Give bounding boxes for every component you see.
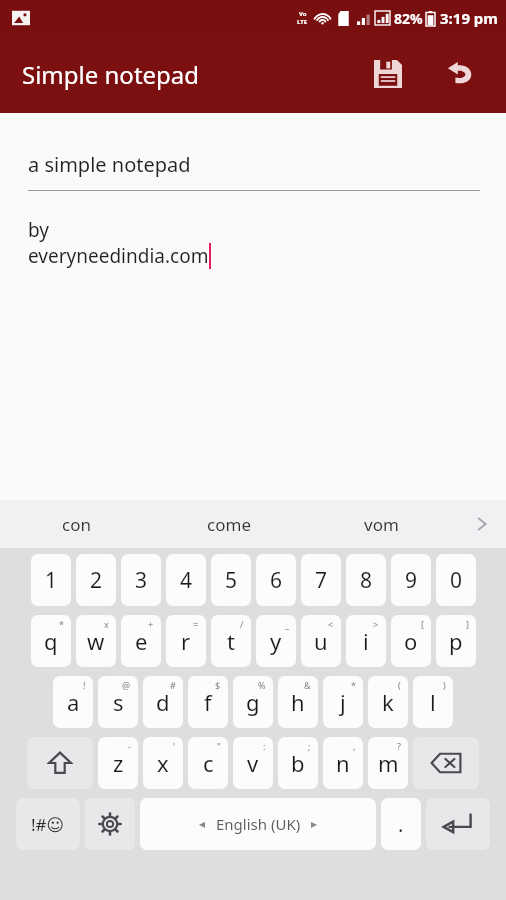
button[interactable]: come xyxy=(152,500,305,548)
button[interactable]: ; xyxy=(278,737,318,789)
button[interactable]: - xyxy=(98,737,138,789)
button[interactable]: " xyxy=(188,737,228,789)
button[interactable]: ) xyxy=(413,676,453,728)
button[interactable]: % xyxy=(233,676,273,728)
button[interactable]: More suggestions xyxy=(458,500,506,548)
staticText: ( xyxy=(398,679,401,691)
button[interactable]: Symbols xyxy=(16,798,80,850)
staticText: 9 xyxy=(405,566,418,595)
staticText: + xyxy=(148,618,154,630)
button[interactable]: 6 xyxy=(256,554,296,606)
button[interactable]: > xyxy=(346,615,386,667)
button[interactable]: x xyxy=(76,615,116,667)
staticText: 3 xyxy=(135,566,148,595)
button[interactable]: 9 xyxy=(391,554,431,606)
staticText: f xyxy=(204,687,212,717)
staticText: 8 xyxy=(360,566,373,595)
button[interactable]: Backspace xyxy=(413,737,479,789)
staticText: by xyxy=(28,217,49,243)
button[interactable]: + xyxy=(121,615,161,667)
button[interactable]: 3 xyxy=(121,554,161,606)
staticText: ? xyxy=(397,740,401,752)
staticText: * xyxy=(351,679,356,691)
button[interactable]: ( xyxy=(368,676,408,728)
button[interactable]: $ xyxy=(188,676,228,728)
button[interactable]: / xyxy=(211,615,251,667)
button[interactable]: vom xyxy=(305,500,458,548)
button[interactable]: < xyxy=(301,615,341,667)
staticText: [ xyxy=(421,618,424,630)
staticText: i xyxy=(363,626,369,656)
staticText: d xyxy=(156,687,170,717)
button[interactable]: Save xyxy=(362,48,414,100)
staticText: / xyxy=(240,618,244,630)
staticText: vom xyxy=(364,513,399,536)
button[interactable]: Undo xyxy=(436,48,488,100)
staticText: ; xyxy=(308,740,311,752)
staticText: Simple notepad xyxy=(22,58,200,91)
staticText: k xyxy=(382,687,394,717)
staticText: z xyxy=(113,748,124,778)
staticText: @ xyxy=(122,679,131,691)
button[interactable]: = xyxy=(166,615,206,667)
button[interactable]: ' xyxy=(143,737,183,789)
staticText: j xyxy=(340,687,346,717)
staticText: n xyxy=(336,748,350,778)
staticText: h xyxy=(291,687,305,717)
button[interactable]: # xyxy=(143,676,183,728)
button[interactable]: Enter xyxy=(426,798,490,850)
button[interactable]: ! xyxy=(53,676,93,728)
button[interactable]: , xyxy=(323,737,363,789)
button[interactable]: _ xyxy=(256,615,296,667)
staticText: 6 xyxy=(270,566,283,595)
staticText: > xyxy=(373,618,379,630)
staticText: come xyxy=(207,513,251,536)
button[interactable]: Space, English (UK) xyxy=(140,798,376,850)
staticText: e xyxy=(135,626,148,656)
button[interactable]: @ xyxy=(98,676,138,728)
button[interactable]: . xyxy=(381,798,421,850)
button[interactable]: Shift xyxy=(27,737,93,789)
staticText: < xyxy=(328,618,334,630)
staticText: a simple notepad xyxy=(28,151,191,178)
staticText: 0 xyxy=(450,566,463,595)
staticText: " xyxy=(217,740,221,752)
staticText: Vo xyxy=(299,10,307,18)
staticText: b xyxy=(291,748,305,778)
staticText: c xyxy=(203,748,214,778)
button[interactable]: ? xyxy=(368,737,408,789)
staticText: w xyxy=(87,626,105,656)
button[interactable]: : xyxy=(233,737,273,789)
button[interactable]: * xyxy=(323,676,363,728)
staticText: 3:19 pm xyxy=(440,8,498,28)
button[interactable]: Settings xyxy=(85,798,135,850)
staticText: ◂ xyxy=(199,817,206,831)
button[interactable]: ] xyxy=(436,615,476,667)
button[interactable]: 7 xyxy=(301,554,341,606)
staticText: ! xyxy=(83,679,86,691)
button[interactable]: * xyxy=(31,615,71,667)
staticText: v xyxy=(247,748,259,778)
button[interactable]: 8 xyxy=(346,554,386,606)
button[interactable]: 0 xyxy=(436,554,476,606)
staticText: s xyxy=(113,687,124,717)
staticText: 82% xyxy=(394,9,423,28)
staticText: 2 xyxy=(90,566,103,595)
staticText: y xyxy=(270,626,282,656)
button[interactable]: [ xyxy=(391,615,431,667)
button[interactable]: 4 xyxy=(166,554,206,606)
staticText: g xyxy=(246,687,260,717)
staticText: * xyxy=(59,618,64,630)
staticText: : xyxy=(263,740,266,752)
staticText: con xyxy=(62,513,91,536)
button[interactable]: & xyxy=(278,676,318,728)
staticText: % xyxy=(258,679,266,691)
staticText: ) xyxy=(443,679,446,691)
button[interactable]: con xyxy=(0,500,152,548)
staticText: q xyxy=(44,626,58,656)
button[interactable]: 2 xyxy=(76,554,116,606)
button[interactable]: 1 xyxy=(31,554,71,606)
staticText: ] xyxy=(466,618,469,630)
button[interactable]: 5 xyxy=(211,554,251,606)
staticText: . xyxy=(398,811,404,838)
